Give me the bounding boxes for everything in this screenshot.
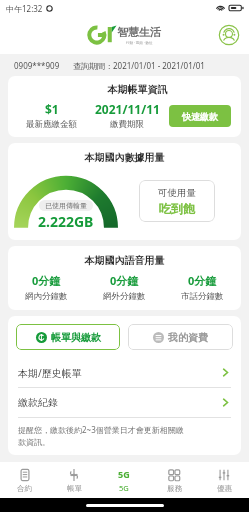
staticText: 5G [119,483,129,493]
staticText: 帳單 [67,484,82,493]
button[interactable]: Customer service [217,23,241,47]
button[interactable]: 我的資費 [128,324,233,350]
button[interactable]: 繳款紀錄 [8,388,241,417]
button[interactable]: 帳單 [49,462,99,498]
staticText: 快速繳款 [182,111,218,122]
staticText: 最新應繳金額 [26,119,77,130]
staticText: 行動 · 寬頻 · 數位 [126,40,153,45]
staticText: 2021/11/11 [95,101,160,117]
staticText: 優惠 [217,484,232,493]
button[interactable]: 5G [99,462,149,498]
staticText: 本期國內語音用量 [8,254,241,267]
staticText: 可使用量 [158,187,196,199]
staticText: 服務 [167,484,182,493]
staticText: 5G [118,468,130,480]
staticText: 吃到飽 [159,201,195,216]
staticText: 0分鐘 [110,273,139,288]
staticText: 網外分鐘數 [103,291,146,302]
button[interactable]: 服務 [149,462,199,498]
button[interactable]: 帳單與繳款 [16,324,120,350]
staticText: 已使用傳輸量 [45,201,87,210]
staticText: 提醒您，繳款後約2~3個營業日才會更新相關繳 款資訊。 [18,424,184,447]
button[interactable]: 合約 [0,462,49,498]
staticText: 市話分鐘數 [181,291,224,302]
staticText: 帳單與繳款 [51,331,101,344]
staticText: 繳款紀錄 [18,396,58,409]
staticText: 繳費期限 [110,119,144,130]
button[interactable]: 快速繳款 [169,105,231,127]
staticText: 我的資費 [168,331,208,344]
staticText: 智慧生活 [117,25,161,39]
staticText: 中午12:32 [6,3,43,14]
staticText: 0909***909 [14,60,60,71]
staticText: 本期國內數據用量 [8,151,241,164]
staticText: 網內分鐘數 [25,291,68,302]
button[interactable]: 優惠 [199,462,249,498]
staticText: $1 [45,101,59,117]
staticText: 本期/歷史帳單 [18,366,82,380]
staticText: 0分鐘 [188,273,217,288]
button[interactable]: 本期/歷史帳單 [8,358,241,387]
staticText: 查詢期間：2021/01/01 - 2021/01/01 [73,60,205,71]
staticText: 合約 [17,484,32,493]
staticText: 0分鐘 [32,273,61,288]
staticText: 本期帳單資訊 [34,83,241,96]
staticText: 2.222GB [38,212,94,231]
